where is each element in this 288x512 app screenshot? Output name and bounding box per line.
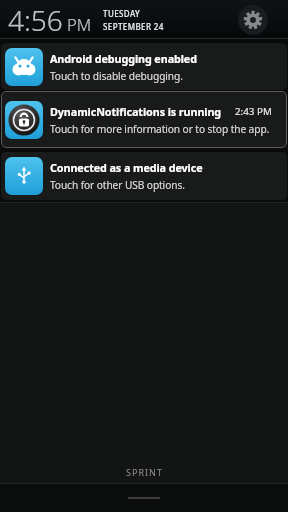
staticText: 2:43 PM xyxy=(235,105,272,118)
staticText: Connected as a media device xyxy=(50,160,285,175)
staticText: Android debugging enabled xyxy=(50,51,285,66)
button[interactable]: DynamicNotifications is running xyxy=(1,91,287,148)
button[interactable] xyxy=(0,483,288,512)
staticText: 4:56 PM xyxy=(8,1,92,39)
staticText: SPRINT xyxy=(126,466,163,478)
staticText: TUESDAY xyxy=(103,8,141,19)
button[interactable] xyxy=(238,5,268,35)
staticText: Touch for more information or to stop th… xyxy=(50,122,270,136)
button[interactable]: Connected as a media device xyxy=(1,152,287,200)
staticText: SEPTEMBER 24 xyxy=(103,21,164,32)
staticText: DynamicNotifications is running xyxy=(50,104,235,119)
staticText: Touch to disable debugging. xyxy=(50,69,183,83)
button[interactable]: Android debugging enabled xyxy=(1,43,287,90)
staticText: Touch for other USB options. xyxy=(50,178,185,192)
